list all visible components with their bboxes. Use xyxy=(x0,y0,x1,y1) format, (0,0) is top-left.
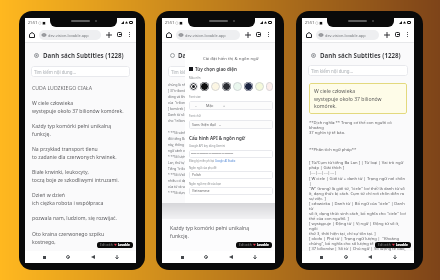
button[interactable]: New tab xyxy=(242,29,253,40)
staticText: [ W ciele | Giới từ + danh từ | Trạng ng… xyxy=(309,176,407,201)
button[interactable]: Home xyxy=(26,29,37,40)
button[interactable]: dev-vision-lovable.app xyxy=(316,30,379,40)
staticText: dev-vision-lovable.app xyxy=(325,33,366,38)
button[interactable]: dev-vision-lovable.app xyxy=(39,30,101,40)
staticText: * **Sô dụng phổ từ xyxy=(168,191,198,195)
staticText: Danh sách Subtitles (1228) xyxy=(320,51,401,59)
button[interactable]: Recents xyxy=(177,252,187,262)
staticText: Danh sách Subtitles (1228) xyxy=(178,51,259,59)
button[interactable]: Recents xyxy=(316,252,326,262)
button[interactable]: Hide keyboard xyxy=(390,252,400,262)
staticText: pozwala nam, ludziom, się rozwijać. xyxy=(32,215,117,222)
staticText: cho "trilionów". ] xyxy=(168,119,193,123)
button[interactable]: Edit with xyxy=(236,242,272,248)
button[interactable]: Back xyxy=(226,252,236,262)
button[interactable]: Background colour xyxy=(266,82,273,91)
staticText: [ 37 trilionów | Số từ | Định ngữ của xyxy=(168,89,223,93)
button[interactable]: Background colour xyxy=(233,82,242,91)
staticText: 21:51 ○ ■ xyxy=(28,20,46,25)
staticText: ♥ xyxy=(253,243,256,247)
button[interactable]: Background colour xyxy=(255,82,264,91)
staticText: Polish xyxy=(192,173,201,177)
button[interactable]: Vietnamese xyxy=(189,187,273,195)
button[interactable]: Polish xyxy=(189,171,273,179)
staticText: Font chữ xyxy=(189,114,201,118)
button[interactable]: Home xyxy=(63,252,73,262)
staticText: nhiều có dạng thức khác nhau, phụ thuộc xyxy=(168,179,231,183)
staticText: đôi tiếng Ba Lan có cách chia từ phức xyxy=(168,137,224,141)
button[interactable]: Background colour xyxy=(222,82,231,91)
staticText: Vietnamese xyxy=(192,189,210,193)
staticText: + xyxy=(223,103,226,108)
button[interactable]: Background colour xyxy=(200,82,209,91)
button[interactable]: New tab xyxy=(381,29,392,40)
button[interactable]: Sans (hiện đại) ⌄ xyxy=(189,120,273,129)
staticText: W ciele człowieka występuje około 37 bil… xyxy=(314,88,402,109)
button[interactable]: Tabs xyxy=(392,29,403,40)
staticText: **Phân tích ngữ pháp** xyxy=(309,147,357,153)
staticText: Lovable xyxy=(256,243,269,247)
button[interactable]: Tabs xyxy=(114,29,125,40)
button[interactable]: More options xyxy=(403,30,412,39)
staticText: Lovable xyxy=(117,243,130,247)
button[interactable]: Edit with xyxy=(375,242,411,248)
button[interactable]: Background colour xyxy=(189,82,198,91)
button[interactable]: dev-vision-lovable.app xyxy=(176,30,240,40)
button[interactable]: More options xyxy=(125,30,134,39)
button[interactable]: Home xyxy=(303,29,314,40)
staticText: Edit with xyxy=(239,243,253,247)
staticText: W ciele człowieka występuje około 37 bil… xyxy=(32,100,124,114)
button[interactable]: Tabs xyxy=(253,29,264,40)
staticText: Ngôn ngữ mẹ đẻ của bạn xyxy=(189,182,222,186)
staticText: Lovable xyxy=(395,243,408,247)
button[interactable]: Home xyxy=(201,252,211,262)
button[interactable]: Back xyxy=(365,252,375,262)
staticText: 21:51 ○ ■ xyxy=(165,20,183,25)
button[interactable]: Settings xyxy=(310,52,317,59)
staticText: Cấu hình API & ngôn ngữ xyxy=(189,135,246,141)
staticText: dev-vision-lovable.app xyxy=(185,33,226,38)
staticText: Mặc xyxy=(206,103,214,108)
staticText: * **Số ít/số nhiều:** Danh từ số ít và s… xyxy=(168,173,228,177)
button[interactable]: – xyxy=(189,101,273,110)
staticText: ngữ cảnh của câu nói. xyxy=(168,149,201,153)
button[interactable]: Background colour xyxy=(211,82,220,91)
button[interactable]: Recents xyxy=(39,252,49,262)
staticText: [ około | Phó từ | Trạng ngữ lượng | "Kh… xyxy=(309,236,400,246)
button[interactable]: More options xyxy=(264,30,273,39)
staticText: Lan, thứ tự từ linh hoạt hơn nhiều so vớ… xyxy=(168,161,229,165)
button[interactable]: New tab xyxy=(103,29,114,40)
staticText: [ 37 bilionów | Số từ | Chủ ngữ | Số lượ… xyxy=(309,246,406,251)
button[interactable]: Home xyxy=(163,29,174,40)
staticText: [ występuje | Động từ | Vị ngữ | Động từ… xyxy=(309,221,407,236)
staticText: của từ và vai trò trong câu. xyxy=(168,185,208,189)
staticText: Oto kraina czerwonego szpiku kostnego, xyxy=(32,231,105,245)
staticText: 21:51 ○ ■ xyxy=(305,20,323,25)
staticText: ♥ xyxy=(392,243,395,247)
button[interactable]: Edit with xyxy=(97,242,133,248)
button[interactable]: Tìm kiếm nội dung... xyxy=(31,66,130,77)
staticText: Tìm kiếm nội dung... xyxy=(34,69,77,75)
staticText: Danh sách Subtitles (1228) xyxy=(43,51,124,59)
staticText: ♥ xyxy=(114,243,117,247)
staticText: chúng là những tế bào gốc tạo máu. xyxy=(168,83,223,87)
staticText: Google AI Studio xyxy=(215,159,236,163)
staticText: Google API key dùng Gemini xyxy=(189,144,226,148)
staticText: Dzień w dzień ich ciężka robota i współp… xyxy=(32,192,104,206)
staticText: CUDA LUDZKIEGO CIAŁA xyxy=(32,84,92,91)
staticText: ••••••••••••••••••••••••••••••••••••••• xyxy=(191,152,234,156)
staticText: Edit with xyxy=(100,243,114,247)
button[interactable]: Tìm kiếm nội dung... xyxy=(168,66,269,77)
staticText: Każdy typ komórki pełni unikalną funkcję… xyxy=(32,123,112,137)
button[interactable]: Home xyxy=(341,252,351,262)
staticText: Font size xyxy=(189,95,201,99)
button[interactable]: Background colour xyxy=(244,82,253,91)
button[interactable]: Hide keyboard xyxy=(250,252,260,262)
button[interactable]: Tìm kiếm nội dung... xyxy=(308,65,408,76)
staticText: dev-vision-lovable.app xyxy=(48,33,89,38)
button[interactable]: Back xyxy=(88,252,98,262)
button[interactable]: Settings xyxy=(33,52,40,59)
button[interactable]: Hide keyboard xyxy=(112,252,122,262)
staticText: dòng và khối lượng | Số từ chỉ số lượng xyxy=(168,95,228,99)
button[interactable]: ••••••••••••••••••••••••••••••••••••••• xyxy=(189,150,273,158)
